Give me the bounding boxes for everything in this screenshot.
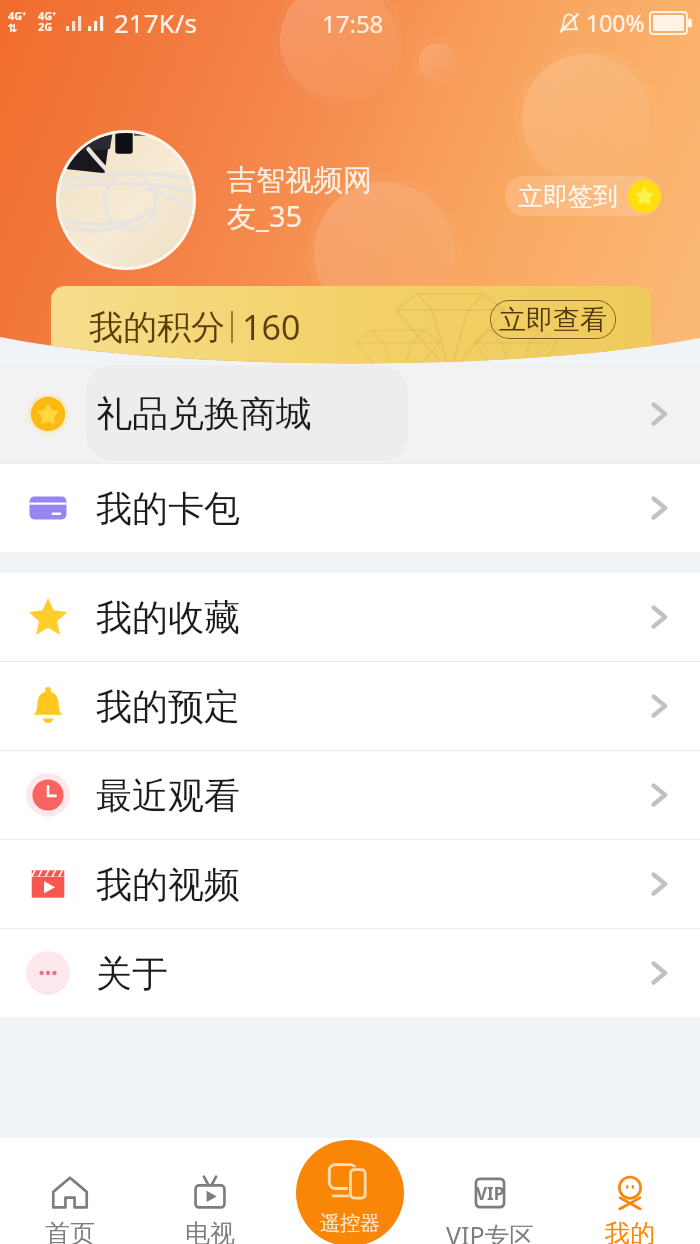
button[interactable]: 我的收藏	[0, 573, 700, 661]
staticText: 我的收藏	[96, 595, 240, 640]
button[interactable]: 首页	[0, 1138, 140, 1244]
staticText: 礼品兑换商城	[96, 391, 312, 436]
staticText: VIP专区	[446, 1218, 535, 1244]
staticText: 立即签到	[518, 181, 618, 212]
button[interactable]: 最近观看	[0, 751, 700, 839]
button[interactable]: 关于	[0, 929, 700, 1017]
staticText: 首页	[45, 1218, 95, 1244]
button[interactable]: 立即签到	[505, 176, 661, 216]
staticText: 217K/s	[114, 5, 197, 40]
button[interactable]: VIP	[420, 1138, 560, 1244]
button[interactable]: 我的	[560, 1138, 700, 1244]
button[interactable]: Remote control	[296, 1140, 404, 1244]
staticText: 我的卡包	[96, 486, 240, 531]
staticText: 4G⁺ ⇅	[8, 8, 27, 34]
button[interactable]: 我的视频	[0, 840, 700, 928]
staticText: 关于	[96, 951, 168, 996]
button[interactable]: 礼品兑换商城	[0, 364, 700, 463]
staticText: 我的	[605, 1218, 655, 1244]
button[interactable]: 我的卡包	[0, 464, 700, 552]
staticText: VIP	[476, 1182, 505, 1205]
staticText: 160	[242, 304, 301, 350]
staticText: 17:58	[322, 7, 384, 40]
staticText: 最近观看	[96, 773, 240, 818]
staticText: 遥控器	[320, 1211, 380, 1236]
staticText: 100%	[586, 7, 645, 38]
staticText: 立即查看	[499, 303, 607, 337]
button[interactable]: 我的预定	[0, 662, 700, 750]
staticText: 我的视频	[96, 862, 240, 907]
button[interactable]: 电视	[140, 1138, 280, 1244]
staticText: 电视	[185, 1218, 235, 1244]
staticText: 吉智视频网 友_35	[227, 162, 372, 236]
staticText: 我的积分	[89, 306, 225, 349]
staticText: 4G⁺ 2G	[38, 8, 57, 35]
button[interactable]: 立即查看	[490, 300, 616, 339]
staticText: 我的预定	[96, 684, 240, 729]
